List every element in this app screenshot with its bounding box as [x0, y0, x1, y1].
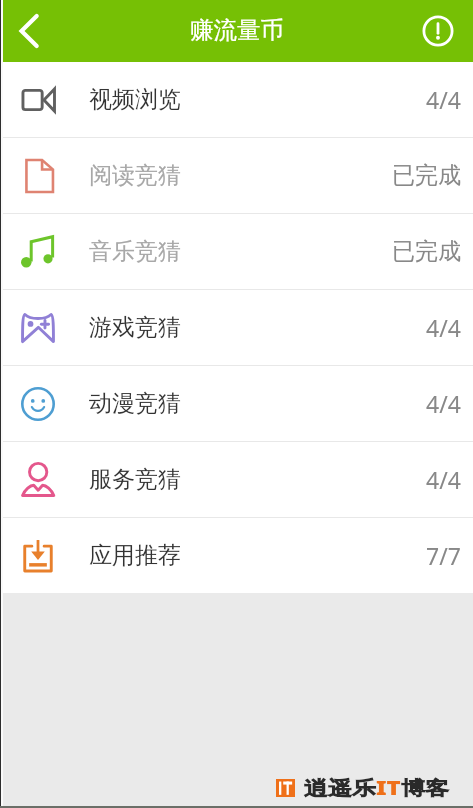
staticText: 视频浏览 — [89, 85, 181, 114]
staticText: 赚流量币 — [190, 15, 284, 45]
staticText: 4/4 — [426, 388, 461, 419]
staticText: 已完成 — [392, 237, 461, 266]
staticText: 逍遥乐 — [304, 776, 376, 800]
button[interactable]: Back — [0, 0, 58, 62]
staticText: 应用推荐 — [89, 541, 181, 570]
staticText: 4/4 — [426, 464, 461, 495]
button[interactable]: 游戏竞猜 — [0, 290, 473, 365]
staticText: 服务竞猜 — [89, 465, 181, 494]
staticText: 4/4 — [426, 84, 461, 115]
staticText: 动漫竞猜 — [89, 389, 181, 418]
button[interactable]: 动漫竞猜 — [0, 366, 473, 441]
staticText: IT — [376, 774, 401, 800]
button[interactable]: 视频浏览 — [0, 62, 473, 137]
button[interactable]: Info — [403, 0, 473, 62]
staticText: 游戏竞猜 — [89, 313, 181, 342]
button[interactable]: 服务竞猜 — [0, 442, 473, 517]
staticText: 已完成 — [392, 161, 461, 190]
staticText: 7/7 — [426, 540, 461, 571]
staticText: 4/4 — [426, 312, 461, 343]
staticText: 阅读竞猜 — [89, 161, 181, 190]
button[interactable]: 阅读竞猜 — [0, 138, 473, 213]
button[interactable]: 应用推荐 — [0, 518, 473, 593]
button[interactable]: 音乐竞猜 — [0, 214, 473, 289]
staticText: 音乐竞猜 — [89, 237, 181, 266]
staticText: 博客 — [401, 776, 449, 800]
